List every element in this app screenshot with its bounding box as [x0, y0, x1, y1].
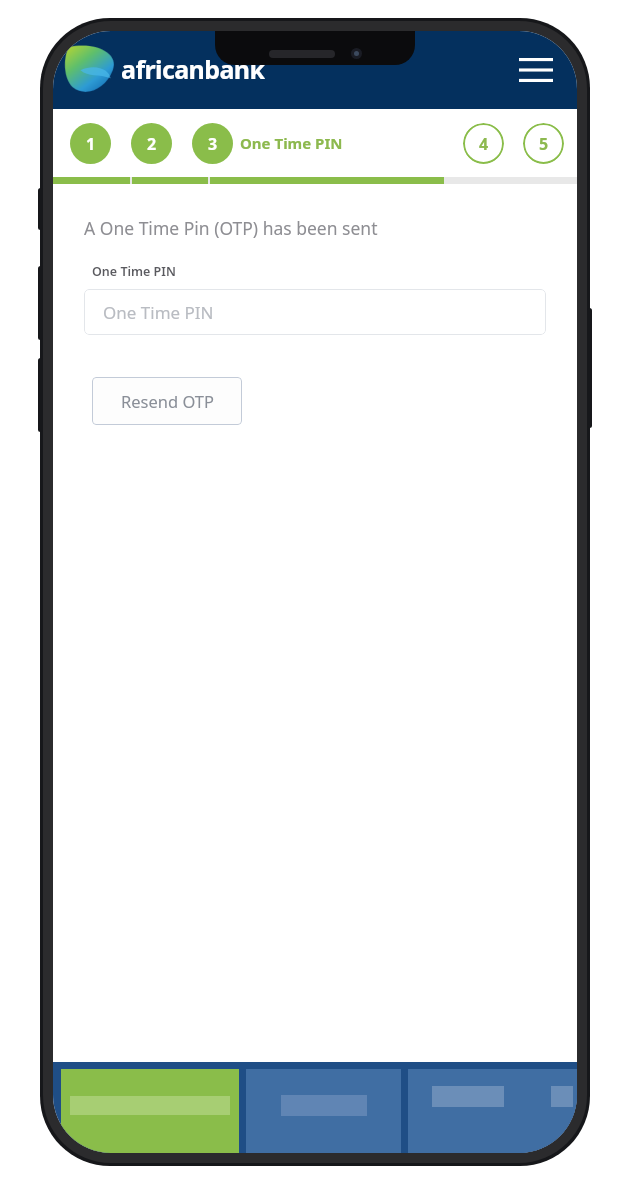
staticText: 3 — [208, 133, 218, 155]
staticText: One Time PIN — [103, 301, 214, 324]
button[interactable]: Accounts — [246, 1069, 401, 1153]
button[interactable]: 5 — [523, 123, 564, 164]
button[interactable]: 4 — [463, 123, 504, 164]
staticText: A One Time Pin (OTP) has been sent — [84, 216, 378, 240]
button[interactable]: 1 — [70, 123, 111, 164]
staticText: 4 — [479, 133, 489, 155]
button[interactable]: Resend OTP — [92, 377, 242, 425]
button[interactable]: More — [408, 1069, 577, 1153]
staticText: One Time PIN — [92, 263, 176, 280]
button[interactable]: Home — [61, 1069, 239, 1153]
staticText: 5 — [539, 133, 549, 155]
staticText: 2 — [147, 133, 157, 155]
button[interactable]: Menu — [513, 47, 559, 93]
staticText: 1 — [86, 133, 96, 155]
button[interactable]: 2 — [131, 123, 172, 164]
staticText: africanbank — [121, 52, 265, 86]
button[interactable]: africanbank — [59, 36, 269, 102]
staticText: Resend OTP — [121, 390, 214, 412]
button[interactable]: One Time PIN — [84, 289, 546, 335]
button[interactable]: 3 — [192, 123, 233, 164]
staticText: One Time PIN — [240, 133, 343, 153]
